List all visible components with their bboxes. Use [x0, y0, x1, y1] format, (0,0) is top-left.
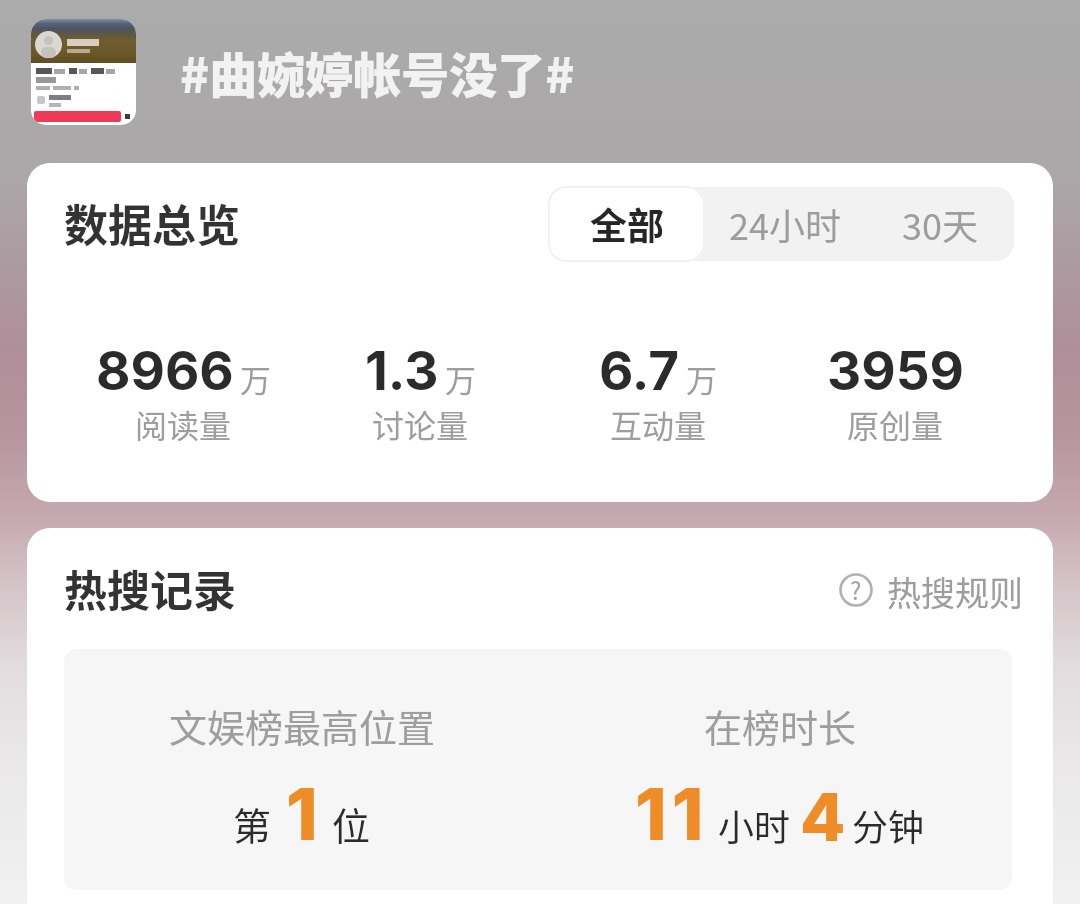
- staticText: 30天: [902, 198, 978, 250]
- button[interactable]: 30天: [865, 187, 1014, 261]
- staticText: 万: [445, 356, 476, 401]
- button[interactable]: 话题预览图: [31, 19, 136, 125]
- staticText: 小时: [718, 799, 791, 851]
- staticText: 热搜规则: [887, 567, 1023, 609]
- staticText: 6.7: [599, 339, 680, 403]
- staticText: 原创量: [847, 401, 944, 447]
- button[interactable]: 24小时: [705, 187, 865, 261]
- staticText: 数据总览: [64, 191, 240, 255]
- staticText: 8966: [96, 339, 234, 403]
- staticText: #曲婉婷帐号没了#: [180, 37, 575, 107]
- staticText: 讨论量: [372, 401, 469, 447]
- button[interactable]: 热搜规则: [839, 569, 1009, 611]
- staticText: 互动量: [610, 401, 707, 447]
- button[interactable]: 全部: [548, 186, 705, 262]
- staticText: 3959: [827, 339, 964, 403]
- staticText: 万: [686, 356, 717, 401]
- staticText: ?: [850, 572, 862, 606]
- staticText: 阅读量: [135, 401, 232, 447]
- staticText: 11: [635, 770, 709, 857]
- staticText: 全部: [590, 197, 664, 251]
- staticText: 4: [800, 777, 846, 857]
- staticText: 热搜记录: [64, 557, 236, 619]
- staticText: 位: [332, 796, 371, 851]
- staticText: 万: [240, 356, 271, 401]
- staticText: 文娱榜最高位置: [169, 698, 436, 753]
- staticText: 第: [233, 796, 272, 851]
- staticText: 24小时: [729, 198, 841, 250]
- staticText: 1: [286, 770, 318, 857]
- staticText: 1.3: [365, 339, 439, 403]
- staticText: 分钟: [852, 799, 925, 851]
- staticText: 在榜时长: [704, 698, 857, 753]
